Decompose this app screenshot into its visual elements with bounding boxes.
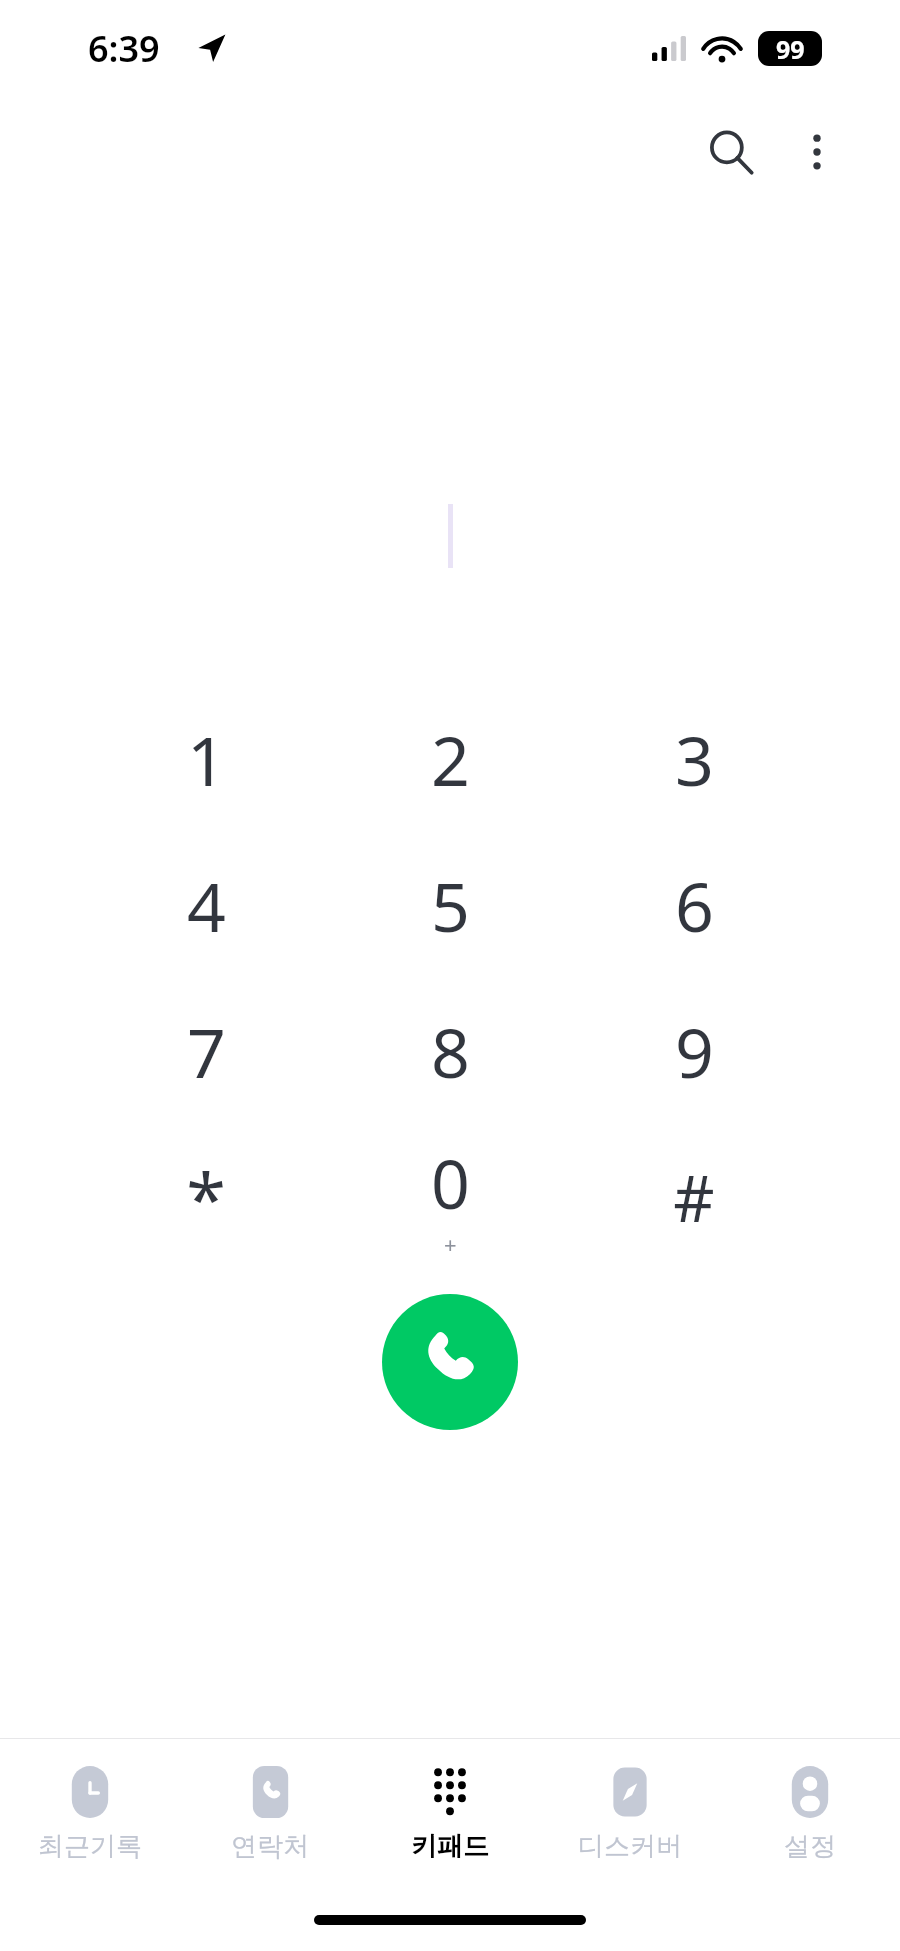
button[interactable]: Search [688, 109, 774, 195]
staticText: 99 [776, 32, 805, 66]
button[interactable]: 7 [84, 978, 328, 1124]
staticText: 6:39 [88, 24, 160, 73]
button[interactable]: 설정 [720, 1739, 900, 1889]
staticText: 디스커버 [578, 1830, 682, 1863]
button[interactable]: # [572, 1124, 816, 1270]
button[interactable]: 최근기록 [0, 1739, 180, 1889]
staticText: + [444, 1229, 457, 1259]
staticText: # [673, 1154, 715, 1241]
button[interactable]: 2 [328, 686, 572, 832]
staticText: 1 [187, 713, 226, 806]
button[interactable]: Call [382, 1294, 518, 1430]
staticText: 연락처 [231, 1830, 309, 1863]
button[interactable]: More options [774, 109, 860, 195]
button[interactable]: 8 [328, 978, 572, 1124]
staticText: 7 [187, 1005, 226, 1098]
staticText: 최근기록 [38, 1830, 142, 1863]
staticText: 8 [431, 1005, 470, 1098]
staticText: 0 [431, 1136, 470, 1229]
staticText: 9 [675, 1005, 714, 1098]
button[interactable]: 키패드 [360, 1739, 540, 1889]
button[interactable]: 6 [572, 832, 816, 978]
staticText: 2 [431, 713, 470, 806]
staticText: 4 [187, 859, 226, 952]
button[interactable]: 3 [572, 686, 816, 832]
staticText: 설정 [784, 1830, 836, 1863]
staticText: 키패드 [411, 1830, 489, 1863]
staticText: 5 [431, 859, 470, 952]
staticText: 3 [675, 713, 714, 806]
button[interactable]: 0 [328, 1124, 572, 1270]
button[interactable]: 디스커버 [540, 1739, 720, 1889]
button[interactable]: 5 [328, 832, 572, 978]
staticText: * [186, 1148, 226, 1246]
button[interactable]: * [84, 1124, 328, 1270]
button[interactable]: 연락처 [180, 1739, 360, 1889]
button[interactable]: 1 [84, 686, 328, 832]
button[interactable]: 9 [572, 978, 816, 1124]
button[interactable]: 4 [84, 832, 328, 978]
staticText: 6 [675, 859, 714, 952]
